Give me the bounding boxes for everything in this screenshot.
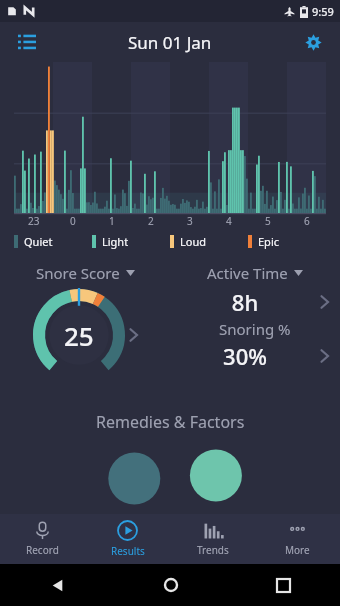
staticText: Active Time	[207, 263, 288, 283]
staticText: Results	[111, 544, 145, 558]
button[interactable]	[0, 439, 340, 465]
staticText: 30%	[170, 341, 320, 371]
staticText: Quiet	[24, 234, 53, 249]
button[interactable]: Loud	[170, 234, 248, 249]
other: Home	[164, 578, 178, 592]
button[interactable]: Quiet	[14, 234, 92, 249]
staticText: 9:59	[312, 4, 334, 19]
staticText: 2	[148, 214, 154, 228]
other: Back	[50, 578, 65, 593]
staticText: 1	[109, 214, 115, 228]
staticText: Light	[102, 234, 129, 249]
staticText: 4	[226, 214, 232, 228]
staticText: Snoring %	[219, 319, 291, 339]
staticText: 25	[64, 318, 94, 353]
button[interactable]: Snore Score	[36, 263, 135, 283]
button[interactable]: Record	[0, 514, 85, 564]
button[interactable]: Results	[85, 514, 170, 564]
staticText: Record	[26, 543, 59, 557]
staticText: Snore Score	[36, 263, 120, 283]
staticText: Remedies & Factors	[96, 411, 245, 433]
button[interactable]: Light	[92, 234, 170, 249]
staticText: Trends	[197, 543, 229, 557]
staticText: 3	[187, 214, 193, 228]
staticText: Sun 01 Jan	[128, 31, 212, 54]
staticText: More	[285, 543, 310, 557]
button[interactable]: Menu	[10, 25, 44, 59]
other: Recents	[277, 579, 290, 592]
button[interactable]: Epic	[248, 234, 326, 249]
button[interactable]: 25	[31, 287, 127, 383]
staticText: 8h	[170, 287, 320, 317]
button[interactable]: 30%	[170, 341, 340, 371]
staticText: 5	[265, 214, 271, 228]
button[interactable]: Settings	[296, 25, 330, 59]
staticText: Loud	[180, 234, 206, 249]
button[interactable]: Active Time	[207, 263, 303, 283]
staticText: 6	[304, 214, 310, 228]
staticText: Epic	[258, 234, 279, 249]
button[interactable]: Trends	[170, 514, 255, 564]
staticText: 0	[70, 214, 76, 228]
button[interactable]: More	[255, 514, 340, 564]
staticText: 23	[28, 214, 40, 228]
button[interactable]: 8h	[170, 287, 340, 317]
